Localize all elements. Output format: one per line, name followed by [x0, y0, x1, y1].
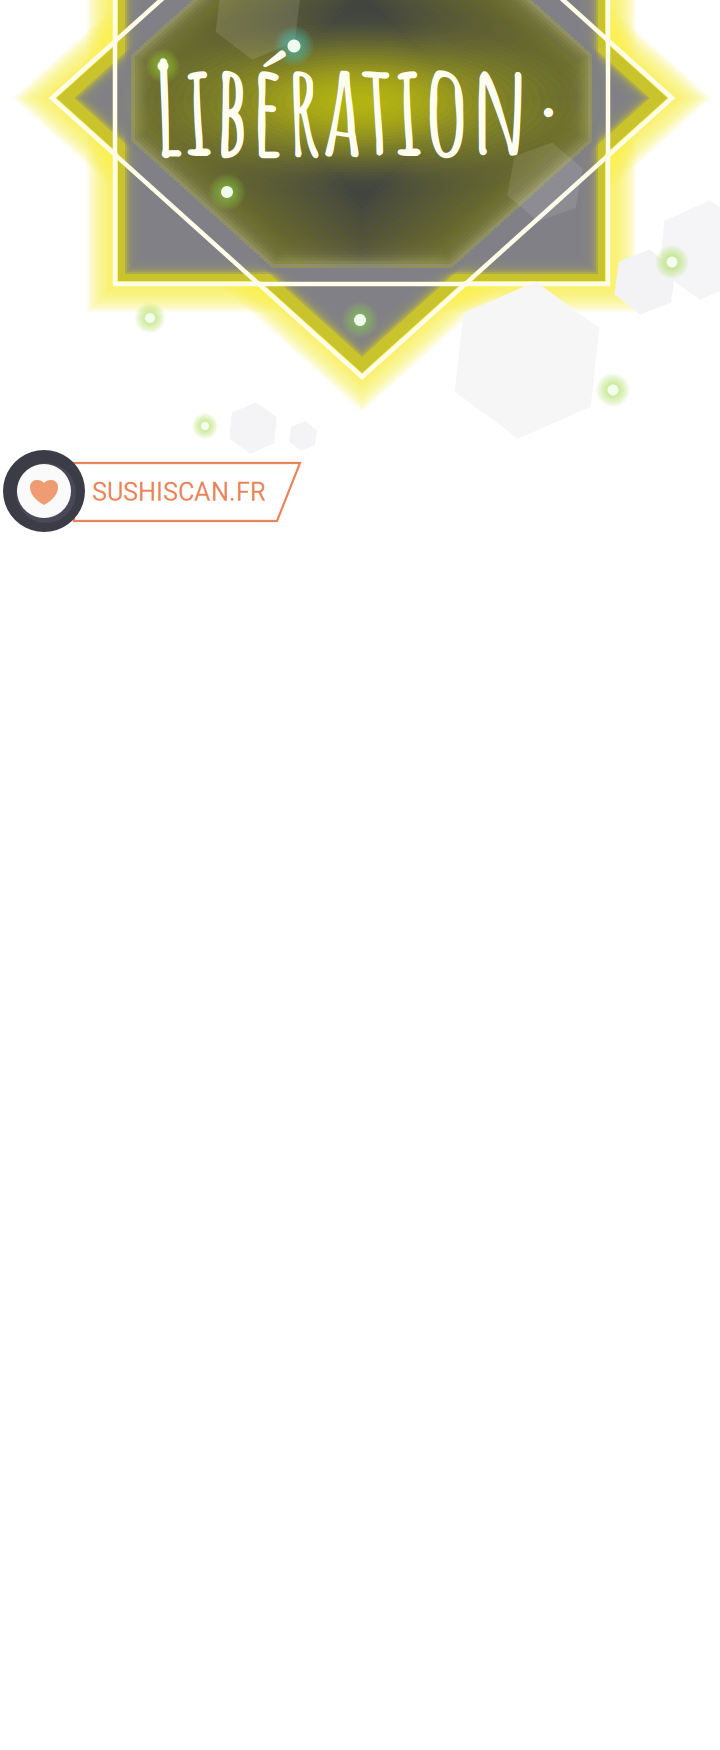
staticText: Libération·: [152, 26, 567, 188]
button[interactable]: SushiScan.fr: [0, 0, 720, 1750]
staticText: SUSHISCAN.FR: [92, 477, 266, 507]
